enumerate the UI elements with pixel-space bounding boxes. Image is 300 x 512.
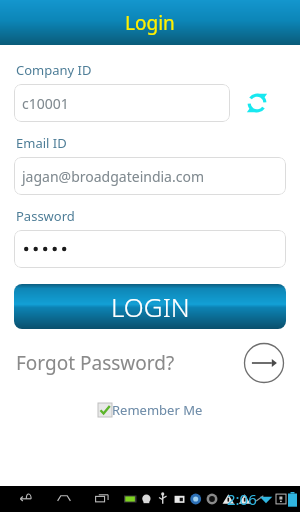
button[interactable]: Go to forgot password	[242, 341, 286, 385]
staticText: LOGIN	[111, 289, 190, 324]
staticText: jagan@broadgateindia.com	[22, 167, 204, 186]
staticText: 2:06	[227, 489, 257, 509]
button[interactable]: LOGIN	[14, 284, 286, 329]
staticText: Password	[16, 207, 75, 225]
staticText: c10001	[22, 94, 69, 113]
button[interactable]: jagan@broadgateindia.com	[14, 157, 286, 195]
button[interactable]: Forgot Password?	[16, 350, 175, 376]
button[interactable]: Home	[52, 486, 76, 510]
button[interactable]: c10001	[14, 84, 230, 122]
staticText: Company ID	[16, 61, 92, 79]
button[interactable]: Remember Me	[98, 401, 203, 419]
button[interactable]: Back	[14, 486, 38, 510]
staticText: Login	[125, 10, 175, 36]
button[interactable]: Password	[14, 230, 286, 268]
staticText: Remember Me	[112, 401, 203, 419]
button[interactable]: Recent apps	[90, 486, 114, 510]
staticText: Email ID	[16, 134, 67, 152]
button[interactable]: Refresh company	[242, 88, 272, 118]
